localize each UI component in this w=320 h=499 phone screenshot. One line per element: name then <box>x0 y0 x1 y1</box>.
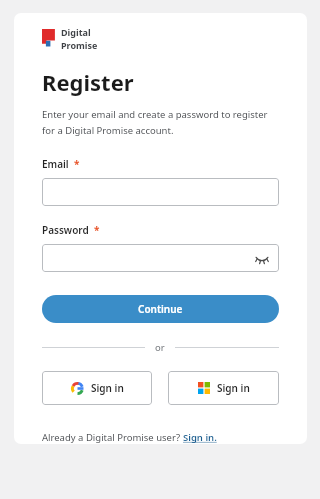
staticText: Password * <box>42 223 100 237</box>
staticText: Sign in <box>91 381 124 395</box>
staticText: Already a Digital Promise user? <box>42 431 183 444</box>
staticText: Register <box>42 67 134 97</box>
button[interactable]: Sign in <box>168 371 279 405</box>
staticText: Continue <box>138 302 183 316</box>
button[interactable]: Show password <box>254 250 270 266</box>
staticText: for a Digital Promise account. <box>42 124 174 137</box>
staticText: Promise <box>61 39 98 51</box>
staticText: Digital <box>61 26 91 38</box>
staticText: Enter your email and create a password t… <box>42 108 268 121</box>
staticText: Sign in <box>217 381 250 395</box>
button[interactable]: Show password <box>42 244 279 272</box>
button[interactable]: Sign in <box>42 371 152 405</box>
button[interactable] <box>42 178 279 206</box>
staticText: or <box>155 341 165 354</box>
staticText: Email * <box>42 157 80 171</box>
button[interactable]: Continue <box>42 295 279 323</box>
staticText: Sign in. <box>183 431 217 444</box>
button[interactable]: Sign in. <box>183 431 217 444</box>
